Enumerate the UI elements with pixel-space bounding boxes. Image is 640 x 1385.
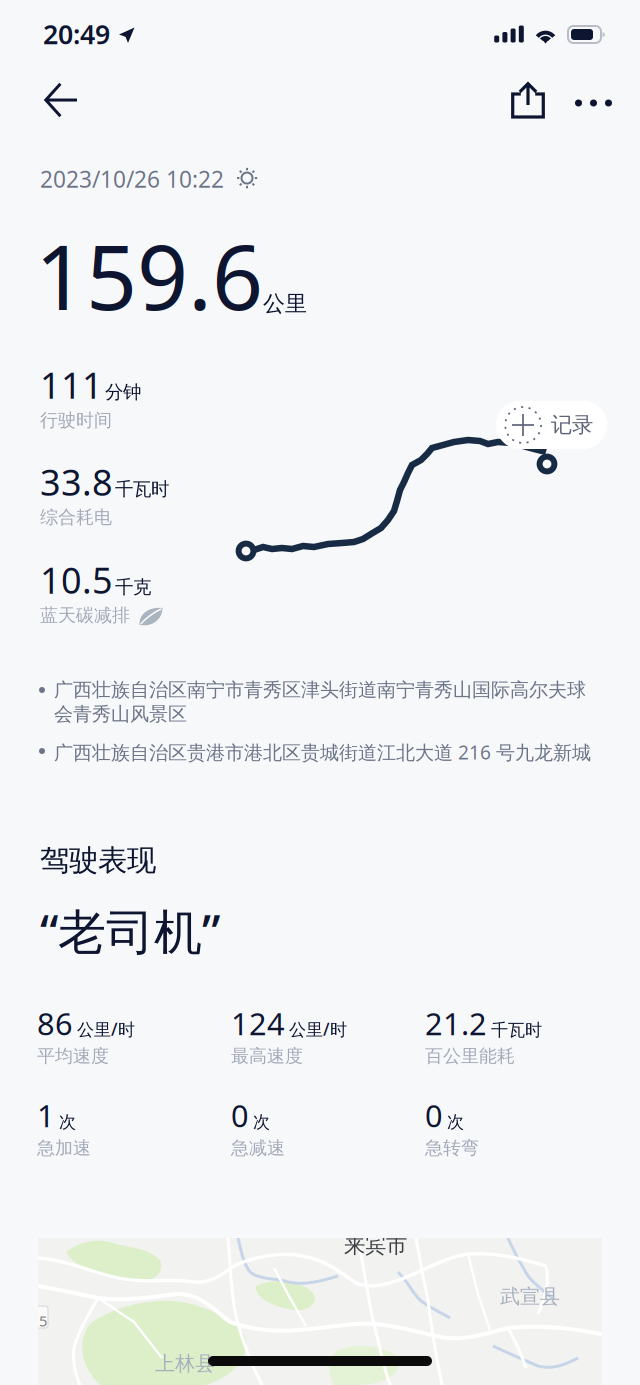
staticText: 10.5	[40, 556, 113, 604]
staticText: 公里/时	[77, 1017, 135, 1041]
button[interactable]: Back	[34, 72, 88, 128]
staticText: “老司机”	[40, 898, 220, 963]
button[interactable]: 记录	[496, 401, 607, 449]
staticText: 记录	[551, 412, 593, 438]
staticText: 2023/10/26 10:22	[40, 164, 224, 194]
staticText: 上林县	[155, 1351, 215, 1376]
button[interactable]: More	[567, 76, 620, 129]
staticText: 159.6	[35, 216, 263, 335]
staticText: 驾驶表现	[40, 842, 156, 879]
staticText: 次	[253, 1111, 270, 1133]
staticText: 111	[40, 361, 103, 409]
staticText: 最高速度	[231, 1045, 303, 1067]
staticText: 广西壮族自治区南宁市青秀区津头街道南宁青秀山国际高尔夫球会青秀山风景区	[54, 678, 586, 726]
staticText: 千瓦时	[115, 478, 169, 501]
staticText: 综合耗电	[40, 506, 112, 528]
staticText: 0	[425, 1095, 443, 1136]
staticText: 蓝天碳减排	[40, 604, 130, 626]
staticText: 平均速度	[37, 1045, 109, 1067]
staticText: 20:49	[43, 16, 110, 52]
staticText: 0	[231, 1095, 249, 1136]
staticText: 行驶时间	[40, 409, 112, 431]
staticText: 来宾市	[344, 1232, 407, 1259]
staticText: 千克	[115, 576, 151, 599]
staticText: 124	[231, 1003, 285, 1044]
staticText: 公里	[263, 290, 307, 318]
staticText: 急加速	[37, 1137, 91, 1159]
staticText: 86	[37, 1003, 73, 1044]
staticText: 次	[447, 1111, 464, 1133]
staticText: 急减速	[231, 1137, 285, 1159]
staticText: 33.8	[40, 458, 113, 506]
staticText: 武宣县	[500, 1284, 560, 1309]
button[interactable]: Share	[501, 73, 555, 126]
staticText: 百公里能耗	[425, 1045, 515, 1067]
staticText: 公里/时	[289, 1017, 347, 1041]
staticText: 千瓦时	[491, 1019, 542, 1041]
staticText: 急转弯	[425, 1137, 479, 1159]
staticText: 5	[39, 1311, 47, 1330]
staticText: 1	[37, 1095, 55, 1136]
staticText: 广西壮族自治区贵港市港北区贵城街道江北大道 216 号九龙新城	[54, 739, 591, 765]
staticText: 次	[59, 1111, 76, 1133]
staticText: 21.2	[425, 1003, 487, 1044]
staticText: 分钟	[105, 381, 141, 404]
